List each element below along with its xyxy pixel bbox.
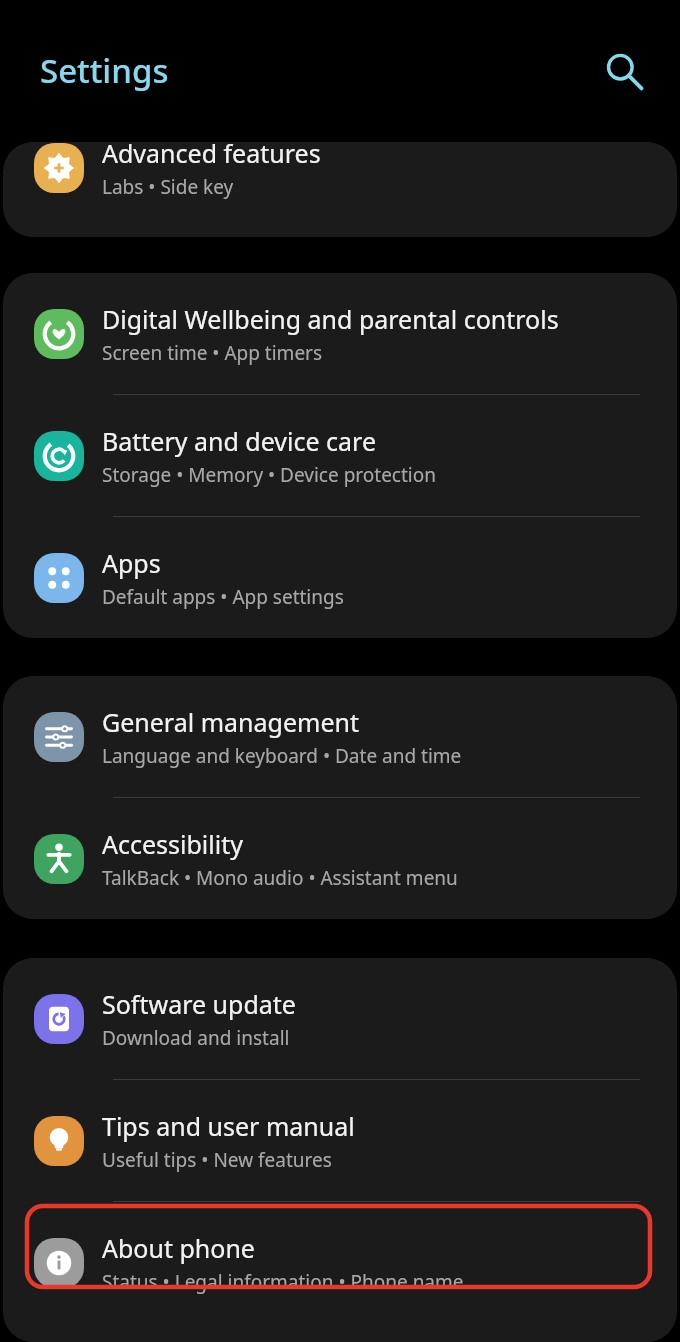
button[interactable]: General management bbox=[3, 676, 677, 797]
staticText: Apps bbox=[102, 546, 161, 580]
staticText: Labs • Side key bbox=[102, 174, 234, 200]
button[interactable]: Apps bbox=[3, 517, 677, 638]
staticText: Battery and device care bbox=[102, 424, 377, 458]
button[interactable]: Search bbox=[592, 40, 654, 102]
staticText: Advanced features bbox=[102, 142, 321, 170]
staticText: Status • Legal information • Phone name bbox=[102, 1269, 464, 1295]
staticText: Language and keyboard • Date and time bbox=[102, 743, 462, 769]
button[interactable]: Software update bbox=[3, 958, 677, 1079]
staticText: Software update bbox=[102, 987, 296, 1021]
staticText: Accessibility bbox=[102, 827, 243, 861]
button[interactable]: Accessibility bbox=[3, 798, 677, 919]
staticText: Digital Wellbeing and parental controls bbox=[102, 302, 559, 336]
staticText: Settings bbox=[40, 48, 169, 93]
button[interactable]: Battery and device care bbox=[3, 395, 677, 516]
button[interactable]: Digital Wellbeing and parental controls bbox=[3, 273, 677, 394]
staticText: Storage • Memory • Device protection bbox=[102, 462, 436, 488]
staticText: Tips and user manual bbox=[102, 1109, 355, 1143]
staticText: Download and install bbox=[102, 1025, 290, 1051]
button[interactable]: About phone bbox=[3, 1202, 677, 1323]
staticText: TalkBack • Mono audio • Assistant menu bbox=[102, 865, 458, 891]
staticText: About phone bbox=[102, 1231, 255, 1265]
staticText: Screen time • App timers bbox=[102, 340, 323, 366]
staticText: Default apps • App settings bbox=[102, 584, 344, 610]
button[interactable]: Tips and user manual bbox=[3, 1080, 677, 1201]
staticText: General management bbox=[102, 705, 359, 739]
button[interactable]: Advanced features bbox=[3, 142, 677, 215]
staticText: Useful tips • New features bbox=[102, 1147, 332, 1173]
